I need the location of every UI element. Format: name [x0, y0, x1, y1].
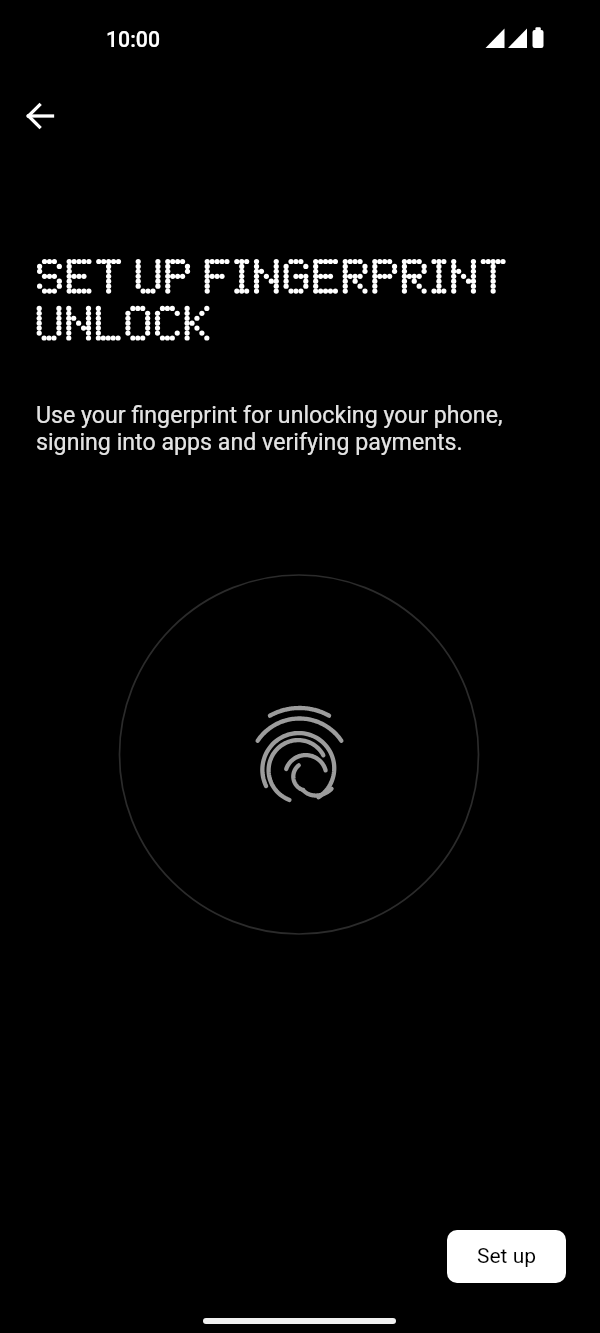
button[interactable]: Back — [12, 88, 68, 144]
staticText: Set up — [477, 1244, 537, 1269]
button[interactable]: Set up — [447, 1230, 566, 1283]
staticText: 10:00 — [106, 27, 161, 52]
staticText: Use your fingerprint for unlocking your … — [36, 401, 536, 456]
